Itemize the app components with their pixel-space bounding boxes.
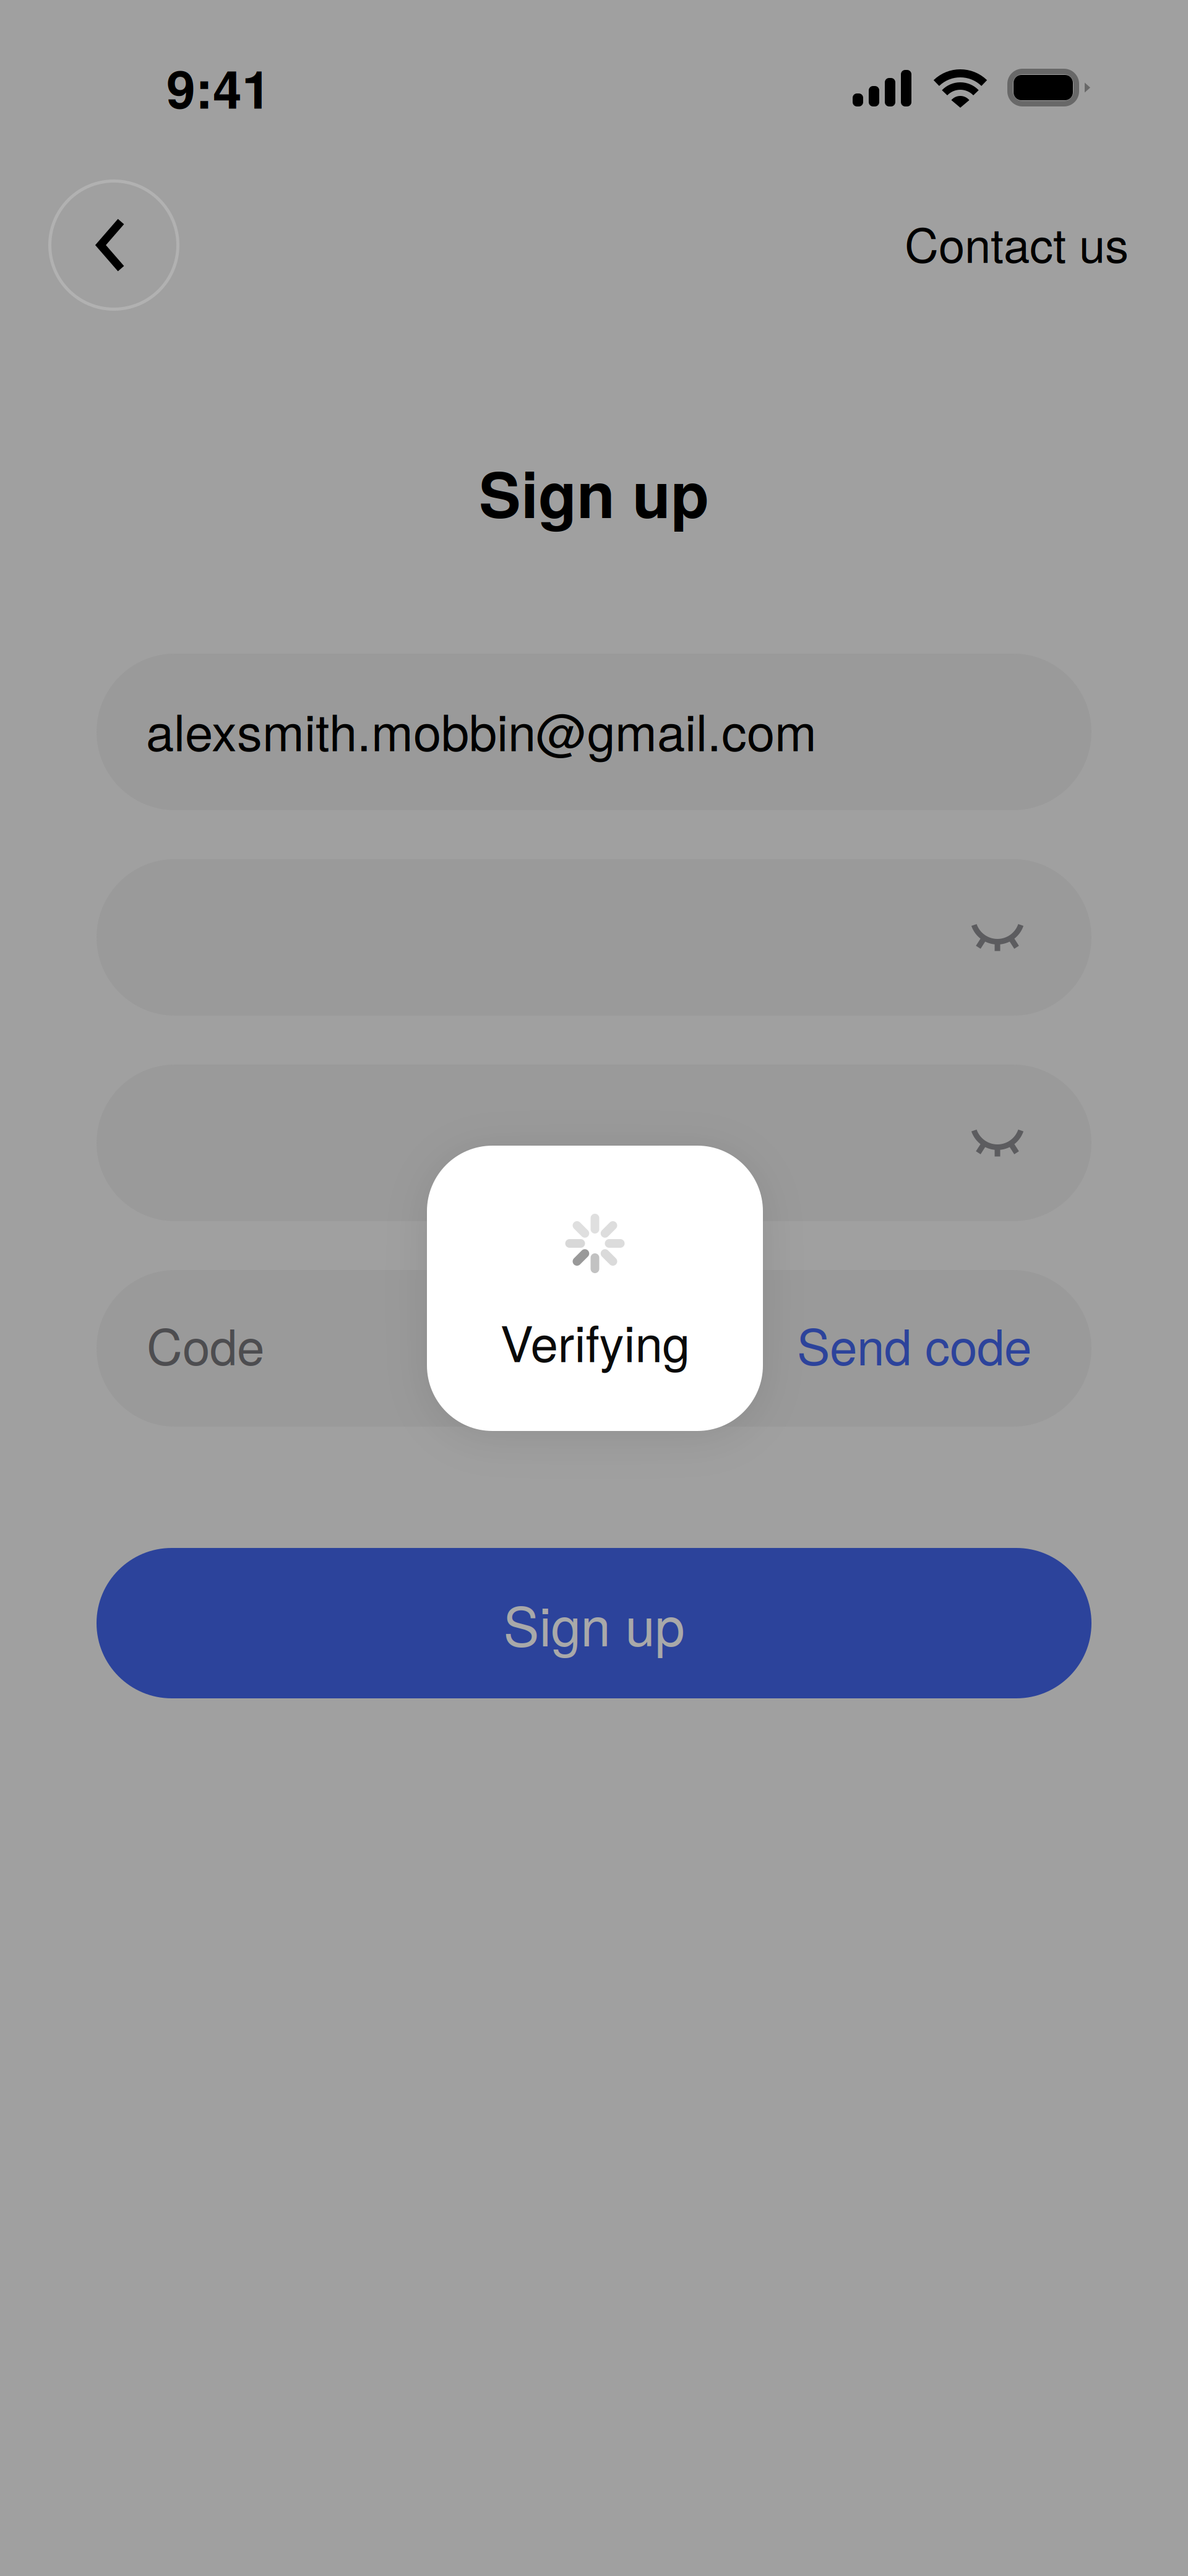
button[interactable]: alexsmith.mobbin@gmail.com bbox=[97, 654, 1091, 810]
button[interactable]: Send code bbox=[797, 1309, 1031, 1379]
button[interactable]: Contact us bbox=[905, 216, 1129, 269]
staticText: Code bbox=[147, 1309, 264, 1379]
staticText: Verifying bbox=[500, 1305, 690, 1376]
button[interactable]: Password bbox=[97, 859, 1091, 1016]
staticText: Contact us bbox=[905, 209, 1129, 276]
button[interactable]: Sign up bbox=[97, 1548, 1091, 1698]
staticText: Sign up bbox=[503, 1585, 685, 1662]
staticText: 9:41 bbox=[166, 50, 271, 125]
staticText: alexsmith.mobbin@gmail.com bbox=[146, 693, 817, 765]
button[interactable]: Password bbox=[97, 1065, 1091, 1221]
button[interactable]: Back bbox=[48, 179, 179, 311]
staticText: Send code bbox=[797, 1309, 1031, 1379]
staticText: Sign up bbox=[479, 447, 709, 537]
